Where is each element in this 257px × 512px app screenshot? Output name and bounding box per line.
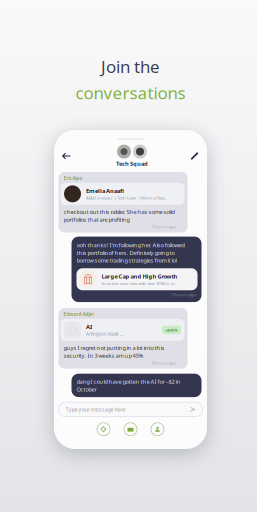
staticText: 7 hours ago	[171, 292, 196, 298]
staticText: +4.05%	[165, 327, 178, 333]
staticText: 7 hours ago	[151, 224, 176, 230]
staticText: Includes securities with over $108 in in…	[101, 281, 177, 286]
staticText: AI&D investor | Tech Lover | Mom of few.…	[86, 195, 167, 201]
staticText: Type your message here	[65, 406, 125, 413]
button[interactable]: Compose message	[186, 144, 203, 167]
staticText: checkout out this rabler. She has some s…	[63, 208, 174, 223]
staticText: 3 hours ago	[151, 360, 176, 366]
staticText: ooh thanks! I'm following her. Also foll…	[76, 241, 184, 264]
staticText: Arlington Asset ...	[86, 331, 123, 337]
staticText: conversations	[75, 81, 185, 104]
button[interactable]: Contacts	[151, 423, 164, 436]
staticText: Tech Squad	[116, 160, 148, 167]
staticText: Large Cap and High Growth	[101, 272, 177, 280]
staticText: dang I could have gotten the AI for ~$2 …	[76, 378, 180, 393]
button[interactable]: Rewards	[97, 423, 110, 436]
staticText: Edward Adjei	[63, 311, 93, 317]
button[interactable]: Camera	[124, 423, 137, 436]
staticText: AI	[86, 323, 92, 331]
button[interactable]: Type your message here	[58, 402, 202, 417]
staticText: Eric Ajao	[63, 175, 82, 181]
staticText: Join the	[101, 55, 160, 78]
staticText: Emelia Anaafi	[86, 187, 124, 195]
staticText: guys I regret not putting in a lot into …	[63, 344, 164, 359]
button[interactable]: Back	[58, 145, 75, 166]
